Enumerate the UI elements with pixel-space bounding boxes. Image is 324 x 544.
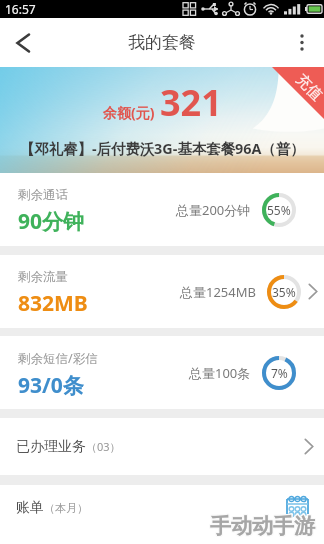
staticText: 手动动手游 (211, 513, 316, 539)
button[interactable]: 剩余流量 (0, 255, 324, 328)
staticText: 账单 (16, 499, 44, 517)
staticText: 剩余短信/彩信 (18, 350, 98, 367)
staticText: 55% (267, 202, 291, 218)
staticText: 35% (272, 284, 296, 300)
staticText: 手动动手游 (209, 514, 314, 540)
staticText: 手动动手游 (209, 512, 314, 538)
staticText: 已办理业务 (16, 438, 86, 456)
button[interactable]: 账单 (0, 485, 324, 544)
staticText: 321 (160, 78, 222, 127)
staticText: 总量1254MB (180, 283, 256, 301)
staticText: 手动动手游 (210, 512, 315, 538)
staticText: 832MB (18, 289, 88, 318)
staticText: 93/0条 (18, 371, 84, 400)
staticText: 手动动手游 (209, 513, 314, 539)
staticText: 充值 (292, 70, 324, 105)
button[interactable]: 充值 (272, 67, 324, 119)
staticText: 我的套餐 (128, 32, 196, 53)
button[interactable]: More options (280, 18, 324, 67)
staticText: 余额(元) (103, 103, 155, 122)
staticText: 手动动手游 (210, 514, 315, 540)
staticText: 手动动手游 (211, 514, 316, 540)
staticText: 90分钟 (18, 207, 85, 236)
button[interactable]: 已办理业务 (0, 418, 324, 475)
staticText: 【邓礼睿】-后付费沃3G-基本套餐96A（普） (20, 139, 305, 159)
staticText: 手动动手游 (211, 512, 316, 538)
staticText: 7% (271, 365, 288, 381)
staticText: 剩余流量 (18, 269, 68, 285)
button[interactable]: Back (0, 18, 46, 67)
staticText: （本月） (44, 501, 88, 515)
staticText: （03） (86, 439, 121, 454)
staticText: 手动动手游 (210, 513, 315, 539)
button[interactable]: 剩余通话 (0, 173, 324, 246)
staticText: 剩余通话 (18, 187, 68, 203)
staticText: 16:57 (5, 1, 36, 17)
staticText: 总量100条 (189, 364, 251, 382)
staticText: 总量200分钟 (176, 201, 251, 219)
button[interactable]: 剩余短信/彩信 (0, 336, 324, 409)
